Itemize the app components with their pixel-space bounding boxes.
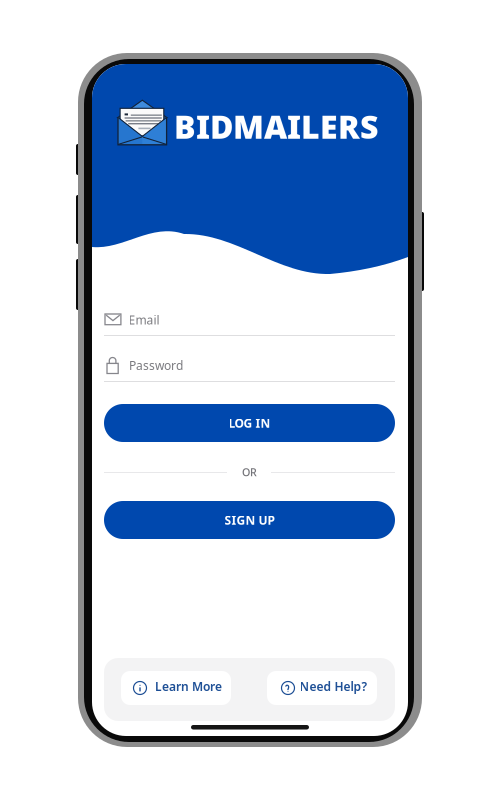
staticText: Learn More: [155, 678, 222, 694]
staticText: SIGN UP: [224, 512, 274, 528]
button[interactable]: Learn More: [121, 671, 231, 705]
button[interactable]: Need Help?: [267, 671, 377, 705]
staticText: LOG IN: [228, 415, 270, 431]
staticText: Email: [128, 312, 159, 328]
button[interactable]: LOG IN: [104, 404, 395, 442]
staticText: Password: [129, 357, 183, 373]
staticText: Need Help?: [299, 678, 367, 694]
staticText: OR: [242, 465, 257, 479]
staticText: BIDMAILERS: [174, 105, 378, 147]
button[interactable]: SIGN UP: [104, 501, 395, 539]
